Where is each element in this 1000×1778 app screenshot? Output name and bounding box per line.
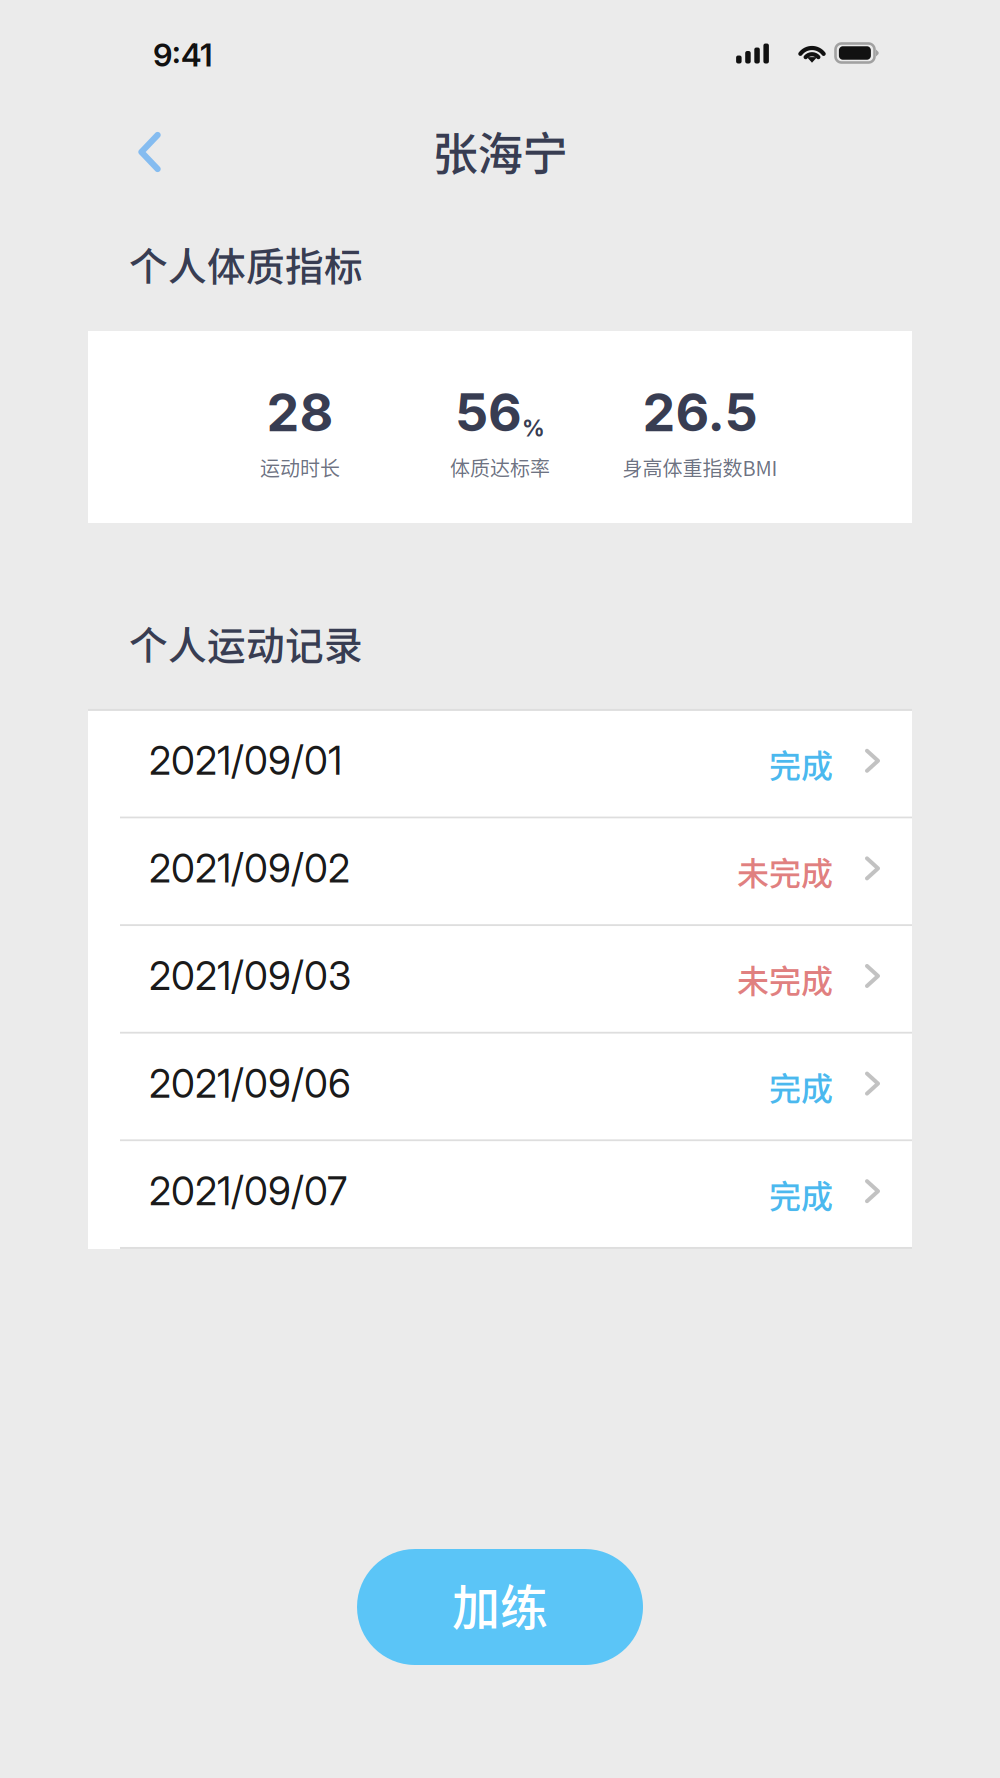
staticText: 运动时长 [260, 453, 340, 482]
staticText: 9:41 [153, 36, 213, 74]
staticText: 2021/09/01 [149, 737, 342, 784]
staticText: 26.5 [642, 381, 757, 444]
button[interactable]: 2021/09/01 [88, 711, 912, 817]
staticText: 完成 [769, 1171, 833, 1217]
staticText: 2021/09/06 [149, 1060, 351, 1107]
staticText: 28 [266, 381, 333, 444]
staticText: 个人体质指标 [129, 236, 363, 292]
button[interactable]: 2021/09/07 [88, 1141, 912, 1247]
staticText: 2021/09/03 [149, 953, 351, 999]
staticText: 56 [455, 381, 522, 444]
staticText: 未完成 [737, 956, 833, 1002]
staticText: 未完成 [737, 848, 833, 894]
staticText: 身高体重指数BMI [622, 453, 777, 482]
staticText: 完成 [769, 741, 833, 787]
button[interactable]: 2021/09/03 [88, 926, 912, 1032]
staticText: 体质达标率 [450, 453, 550, 482]
staticText: 完成 [769, 1063, 833, 1110]
button[interactable]: 2021/09/06 [88, 1034, 912, 1139]
staticText: % [522, 414, 545, 442]
staticText: 2021/09/07 [149, 1168, 347, 1215]
staticText: 加练 [452, 1569, 548, 1639]
button[interactable]: 2021/09/02 [88, 819, 912, 924]
staticText: 个人运动记录 [129, 615, 363, 671]
staticText: 2021/09/02 [149, 845, 350, 892]
button[interactable]: Back [0, 119, 202, 197]
button[interactable]: 加练 [357, 1549, 643, 1665]
staticText: 张海宁 [432, 118, 567, 184]
